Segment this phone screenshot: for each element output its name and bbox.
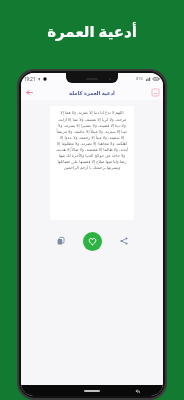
staticText: أدعية العمرة: [47, 21, 137, 41]
button[interactable]: Copy: [53, 233, 69, 249]
button[interactable]: Share: [116, 233, 132, 249]
staticText: اللهم لا تدع لنا ذنبا إلا غفرته، ولا هما…: [55, 110, 129, 170]
button[interactable]: Settings: [149, 86, 161, 98]
button[interactable]: Back: [133, 387, 141, 395]
button[interactable]: Back: [23, 86, 36, 99]
staticText: 19:21: [24, 76, 36, 82]
button[interactable]: اللهم لا تدع لنا ذنبا إلا غفرته، ولا هما…: [50, 106, 134, 220]
button[interactable]: Home: [84, 390, 100, 392]
staticText: 81%: [136, 76, 144, 81]
button[interactable]: Favorite: [83, 232, 102, 251]
staticText: أدعية العمرة كاملة: [69, 89, 115, 96]
